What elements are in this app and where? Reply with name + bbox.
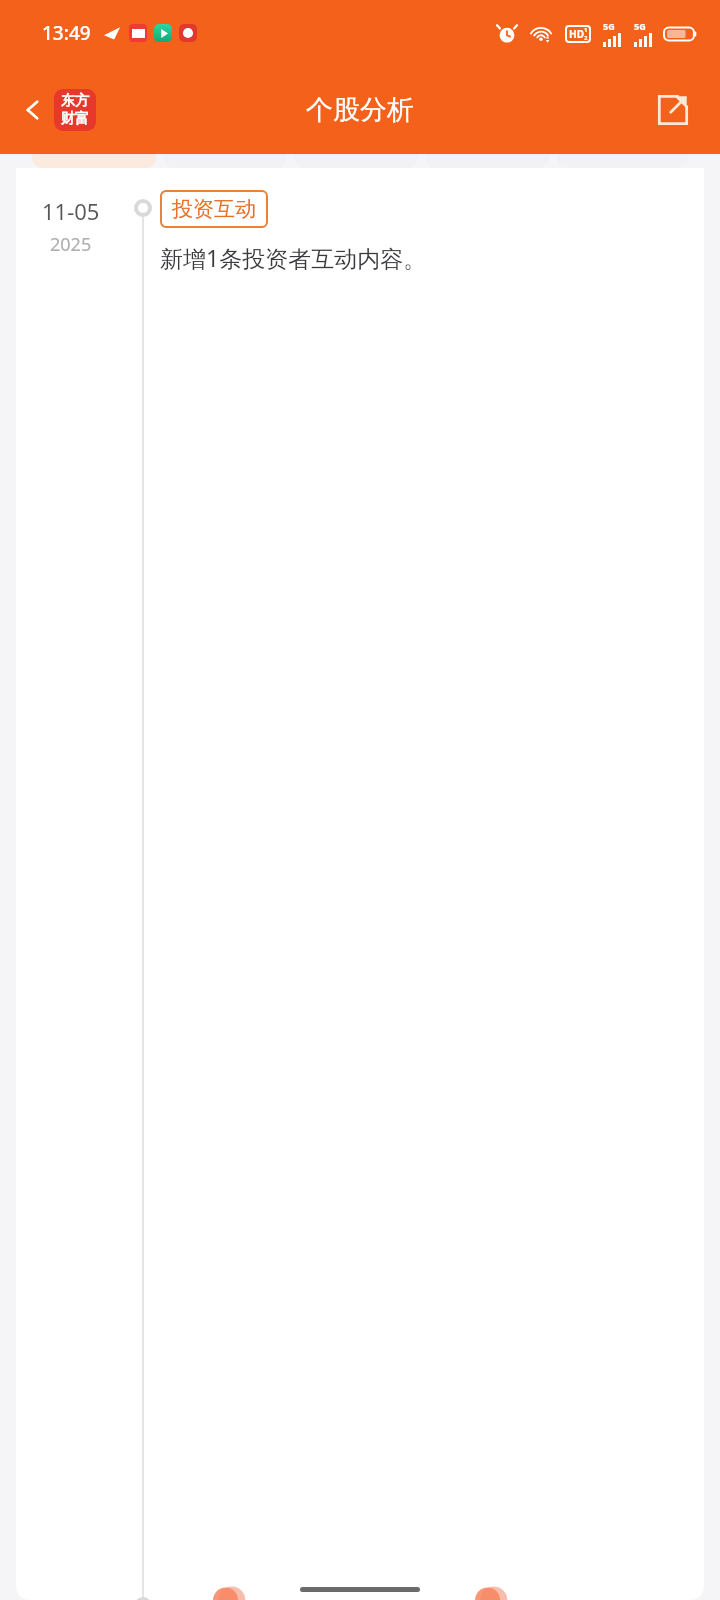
staticText: 2025 bbox=[50, 232, 92, 257]
staticText: 财富 bbox=[61, 110, 89, 128]
button[interactable]: Back bbox=[14, 83, 102, 137]
button[interactable]: Share bbox=[648, 85, 698, 135]
staticText: 5G bbox=[603, 20, 615, 32]
staticText: HD bbox=[569, 27, 584, 41]
staticText: 个股分析 bbox=[306, 93, 414, 127]
button[interactable]: 投资互动 bbox=[172, 196, 256, 222]
button[interactable] bbox=[32, 154, 156, 168]
staticText: 1 bbox=[584, 26, 588, 34]
staticText: 13:49 bbox=[42, 20, 91, 46]
staticText: 投资互动 bbox=[172, 196, 256, 222]
staticText: 11-05 bbox=[42, 196, 100, 226]
staticText: 新增1条投资者互动内容。 bbox=[160, 242, 427, 273]
staticText: 5G bbox=[634, 20, 646, 32]
staticText: 东方 bbox=[61, 92, 89, 110]
staticText: 2 bbox=[584, 34, 588, 42]
